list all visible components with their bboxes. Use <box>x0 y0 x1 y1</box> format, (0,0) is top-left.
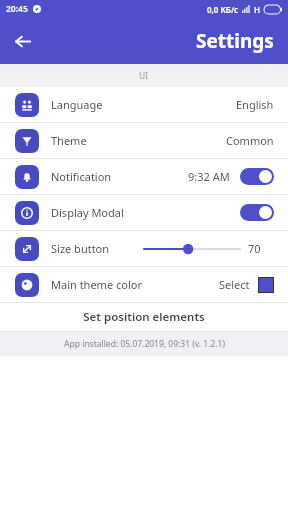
staticText: App installed: 05.07.2019, 09:31 (v. 1.2… <box>64 338 225 350</box>
staticText: Size button <box>51 241 144 256</box>
staticText: Theme <box>51 133 226 148</box>
staticText: Common <box>226 133 274 148</box>
staticText: 20:45 <box>6 3 28 15</box>
button[interactable]: Size button <box>0 231 288 266</box>
button[interactable]: Pick theme colour <box>258 277 274 293</box>
staticText: UI <box>139 70 149 82</box>
staticText: Settings <box>196 28 274 54</box>
button[interactable]: Language <box>0 87 288 122</box>
staticText: Set position elements <box>83 309 205 325</box>
staticText: English <box>236 97 274 112</box>
button[interactable]: Toggle <box>240 168 274 185</box>
staticText: H <box>254 4 261 15</box>
button[interactable]: Back <box>8 27 36 55</box>
button[interactable]: Size button slider <box>144 240 240 258</box>
staticText: 9:32 AM <box>188 169 230 184</box>
staticText: Notification <box>51 169 188 184</box>
button[interactable]: Set position elements <box>0 303 288 331</box>
button[interactable]: Toggle <box>240 204 274 221</box>
staticText: Select <box>219 277 250 292</box>
staticText: 0,0 КБ/с <box>207 4 239 15</box>
button[interactable]: Notification <box>0 159 288 194</box>
staticText: Display Modal <box>51 205 240 220</box>
button[interactable]: Theme <box>0 123 288 158</box>
staticText: Language <box>51 97 236 112</box>
staticText: 70 <box>248 241 261 256</box>
button[interactable]: Display Modal <box>0 195 288 230</box>
staticText: Main theme color <box>51 277 219 292</box>
button[interactable]: Main theme color <box>0 267 288 302</box>
